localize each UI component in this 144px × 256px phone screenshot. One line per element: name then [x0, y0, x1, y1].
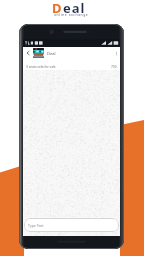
staticText: Deal — [47, 51, 56, 56]
staticText: D — [52, 0, 63, 17]
button[interactable]: More options — [112, 47, 120, 59]
staticText: 700 — [111, 65, 117, 69]
staticText: eal — [63, 0, 86, 17]
staticText: 3 seats sofa for sale — [26, 65, 56, 69]
button[interactable]: Type Text — [24, 218, 119, 232]
staticText: online exchange — [54, 12, 89, 17]
staticText: Type Text — [28, 223, 44, 228]
button[interactable]: Back — [23, 47, 33, 59]
